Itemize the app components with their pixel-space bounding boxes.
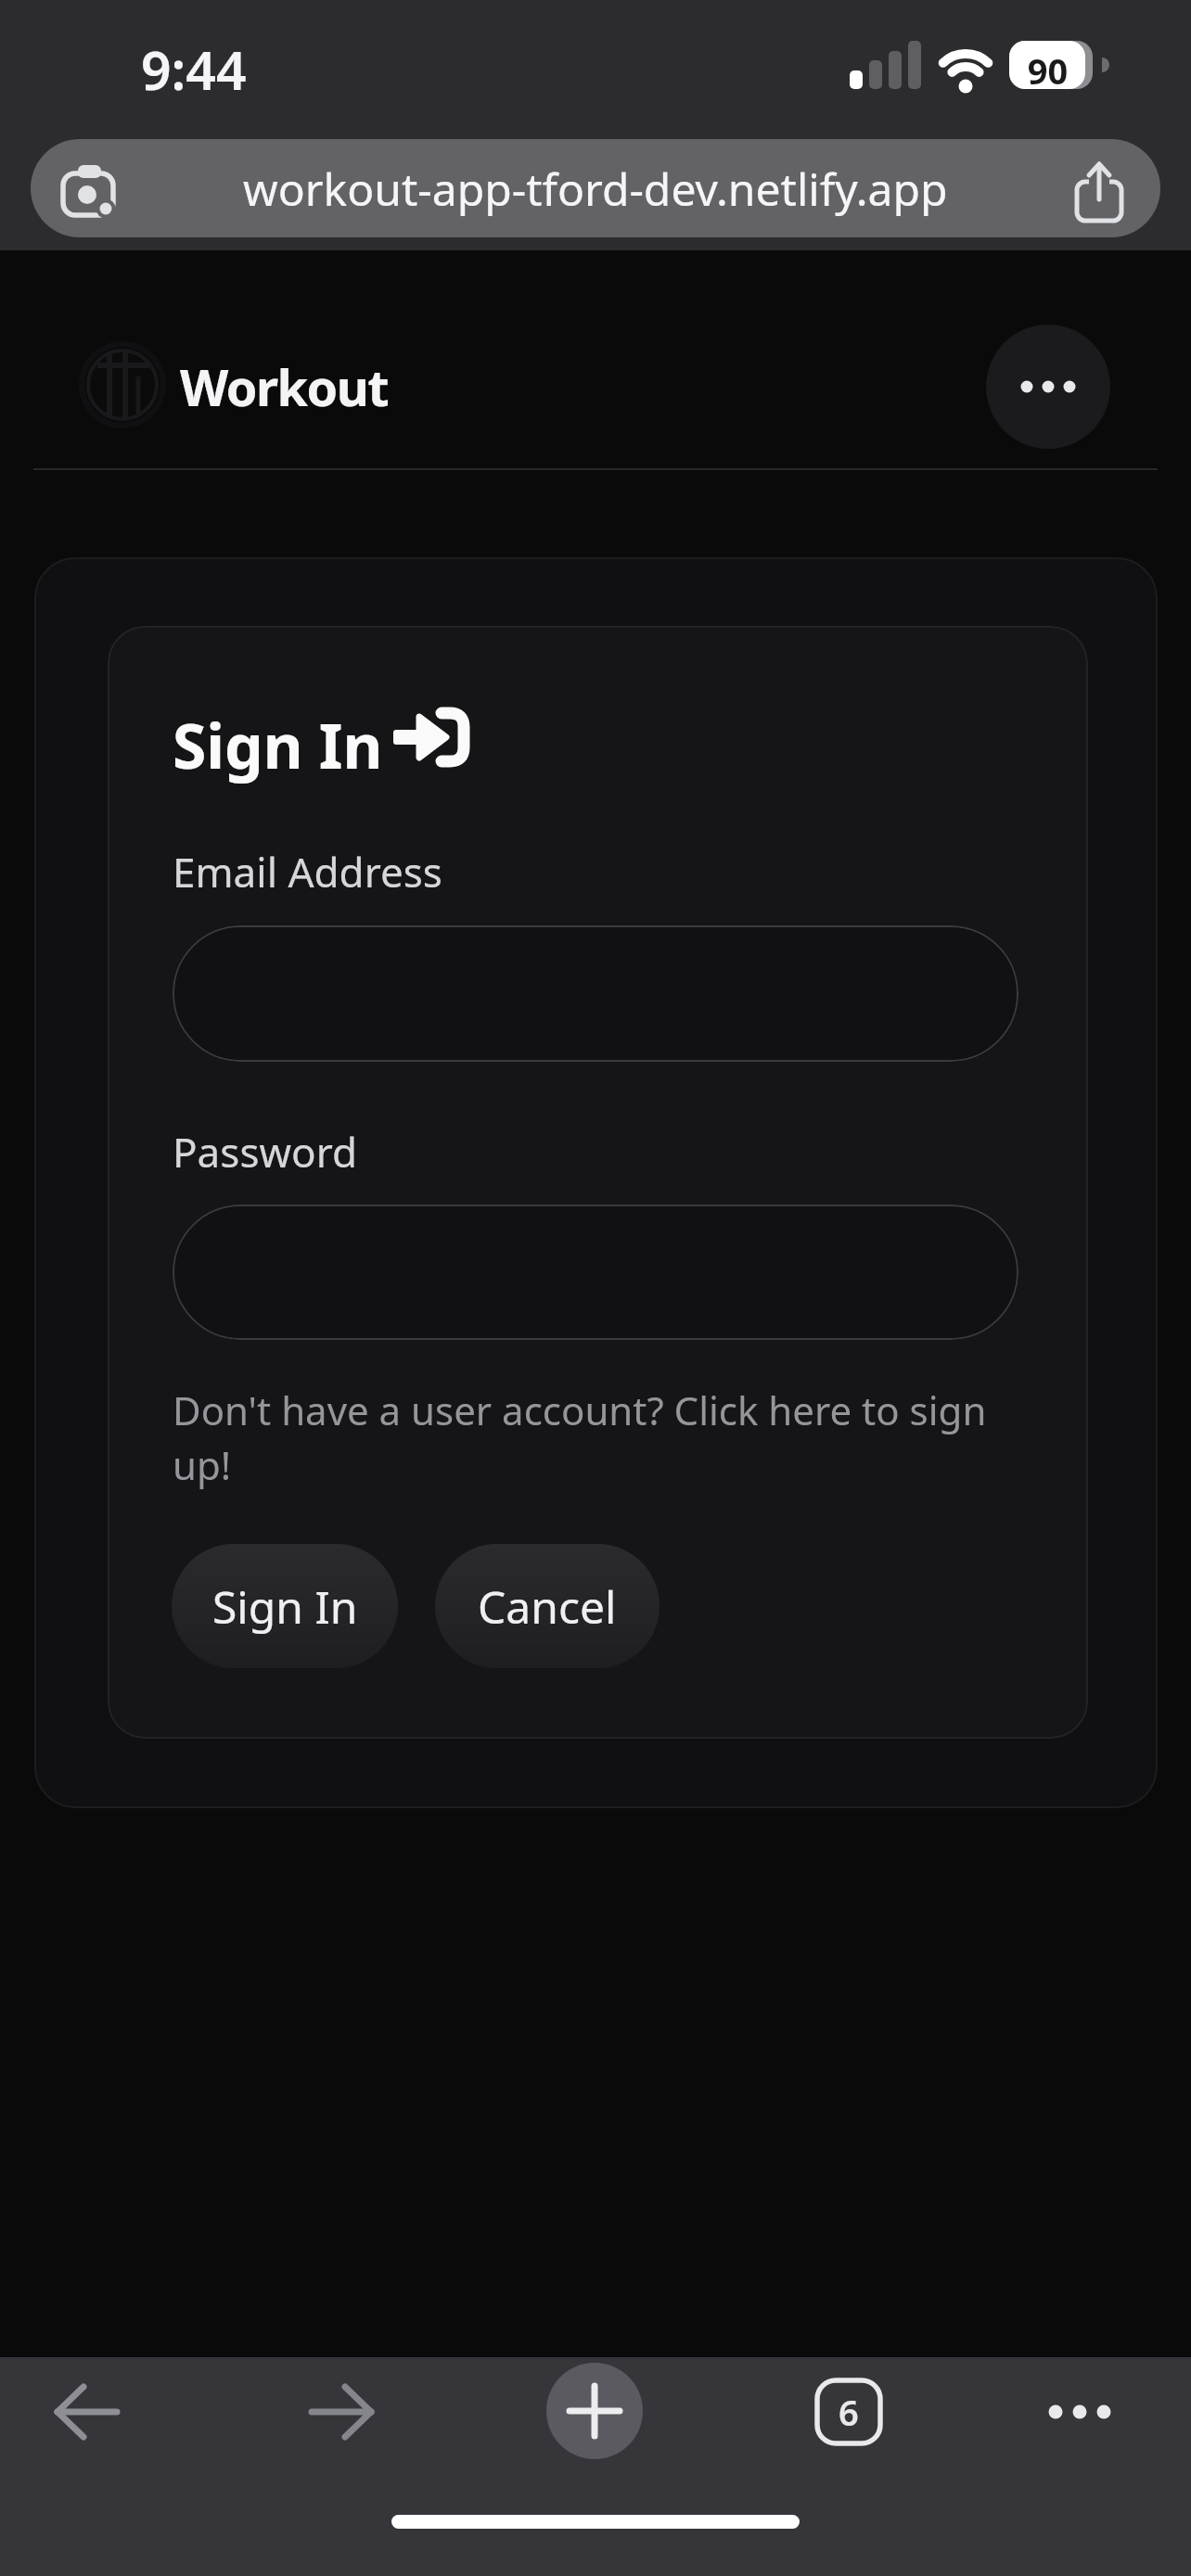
button[interactable]: 6 <box>814 2378 883 2446</box>
button[interactable] <box>546 2363 643 2459</box>
button[interactable]: Sign In <box>172 1544 398 1668</box>
staticText: Sign In <box>173 703 383 786</box>
button[interactable] <box>308 2383 375 2441</box>
button[interactable] <box>173 925 1018 1062</box>
staticText: workout-app-tford-dev.netlify.app <box>243 159 948 219</box>
button[interactable]: Cancel <box>435 1544 660 1668</box>
button[interactable] <box>986 325 1110 449</box>
staticText: Cancel <box>478 1576 617 1637</box>
button[interactable] <box>1041 2398 1119 2426</box>
staticText: 90 <box>1009 46 1086 95</box>
staticText: 6 <box>839 2388 859 2436</box>
staticText: Password <box>173 1124 358 1180</box>
button[interactable] <box>54 2383 121 2441</box>
button[interactable]: Don't have a user account? Click here to… <box>173 1384 987 1492</box>
button[interactable]: workout-app-tford-dev.netlify.app <box>31 139 1160 237</box>
staticText: Sign In <box>212 1576 358 1637</box>
staticText: Workout <box>180 352 389 421</box>
staticText: 9:44 <box>141 33 247 106</box>
staticText: Email Address <box>173 844 442 899</box>
button[interactable] <box>173 1205 1018 1340</box>
